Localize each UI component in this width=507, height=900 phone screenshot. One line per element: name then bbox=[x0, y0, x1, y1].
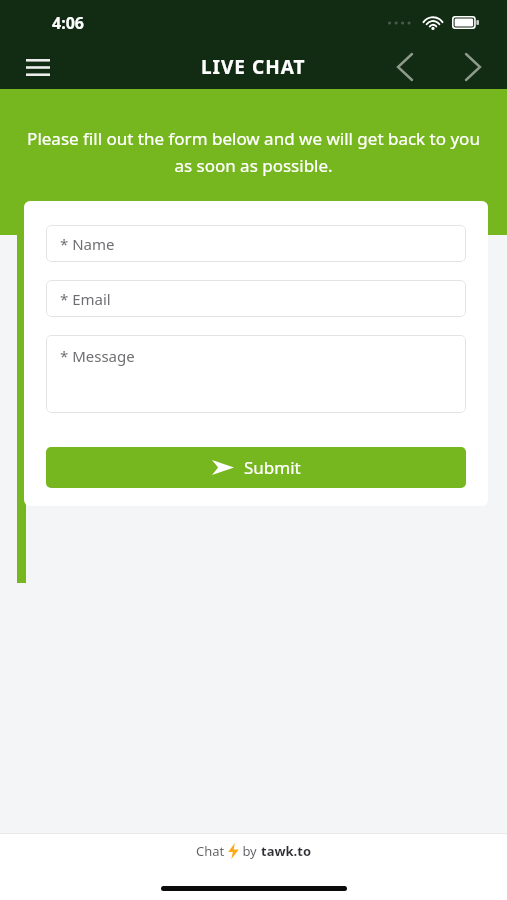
button[interactable]: Forward bbox=[451, 45, 495, 89]
button[interactable]: Submit bbox=[46, 447, 466, 488]
staticText: 4:06 bbox=[52, 12, 84, 34]
staticText: * Message bbox=[60, 346, 135, 366]
staticText: by bbox=[239, 842, 261, 860]
button[interactable]: Chat bbox=[0, 834, 507, 868]
staticText: * Email bbox=[60, 289, 111, 309]
staticText: tawk.to bbox=[261, 842, 312, 860]
staticText: * Name bbox=[60, 234, 115, 254]
staticText: Submit bbox=[244, 456, 301, 479]
staticText: Please fill out the form below and we wi… bbox=[22, 127, 485, 177]
staticText: Chat bbox=[196, 842, 228, 860]
button[interactable]: * Name bbox=[46, 225, 466, 262]
staticText: LIVE CHAT bbox=[201, 54, 306, 80]
button[interactable]: * Message bbox=[46, 335, 466, 413]
button[interactable]: Menu bbox=[16, 45, 60, 89]
button[interactable]: * Email bbox=[46, 280, 466, 317]
button[interactable]: Back bbox=[383, 45, 427, 89]
